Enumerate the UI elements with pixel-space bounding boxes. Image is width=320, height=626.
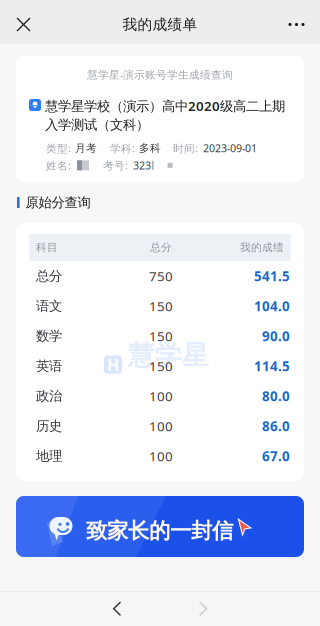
- staticText: 政治: [36, 388, 62, 404]
- staticText: 多科: [139, 142, 161, 155]
- staticText: 750: [149, 267, 173, 285]
- staticText: 时间:: [173, 141, 198, 155]
- staticText: 90.0: [262, 327, 290, 345]
- staticText: H: [107, 354, 119, 375]
- staticText: 入学测试（文科）: [45, 117, 149, 133]
- button[interactable]: 致家长的一封信: [16, 496, 304, 557]
- staticText: 致家长的一封信: [86, 518, 233, 544]
- staticText: 月考: [75, 142, 97, 155]
- staticText: 总分: [150, 241, 172, 254]
- staticText: 2023-09-01: [203, 141, 257, 155]
- staticText: 地理: [36, 448, 62, 464]
- staticText: 类型:: [46, 141, 71, 155]
- staticText: 150: [149, 357, 173, 375]
- staticText: 100: [149, 417, 173, 435]
- staticText: 323: [133, 158, 151, 172]
- staticText: 86.0: [262, 417, 290, 435]
- staticText: 历史: [36, 418, 62, 434]
- staticText: 慧学星: [128, 339, 209, 372]
- staticText: 慧学星-演示账号学生成绩查询: [87, 67, 233, 82]
- staticText: 150: [149, 297, 173, 315]
- staticText: 学科:: [110, 141, 135, 155]
- staticText: 科目: [36, 241, 58, 254]
- staticText: 数学: [36, 328, 62, 344]
- staticText: 慧学星学校（演示）高中2020级高二上期: [45, 97, 285, 115]
- button[interactable]: Forward: [180, 592, 226, 626]
- staticText: 总分: [36, 268, 62, 284]
- staticText: 114.5: [254, 357, 290, 375]
- staticText: 原始分查询: [26, 194, 91, 211]
- staticText: 我的成绩: [240, 241, 284, 254]
- staticText: 541.5: [254, 267, 290, 285]
- staticText: 100: [149, 447, 173, 465]
- staticText: 考号:: [103, 158, 128, 172]
- staticText: 67.0: [262, 447, 290, 465]
- button[interactable]: More: [273, 2, 320, 46]
- staticText: 150: [149, 327, 173, 345]
- staticText: 英语: [36, 358, 62, 374]
- button[interactable]: Back: [94, 592, 140, 626]
- staticText: 我的成绩单: [122, 15, 197, 33]
- staticText: 100: [149, 387, 173, 405]
- staticText: 104.0: [254, 297, 290, 315]
- staticText: 80.0: [262, 387, 290, 405]
- staticText: 姓名:: [46, 158, 71, 172]
- staticText: 语文: [36, 298, 62, 314]
- button[interactable]: Close: [0, 2, 47, 46]
